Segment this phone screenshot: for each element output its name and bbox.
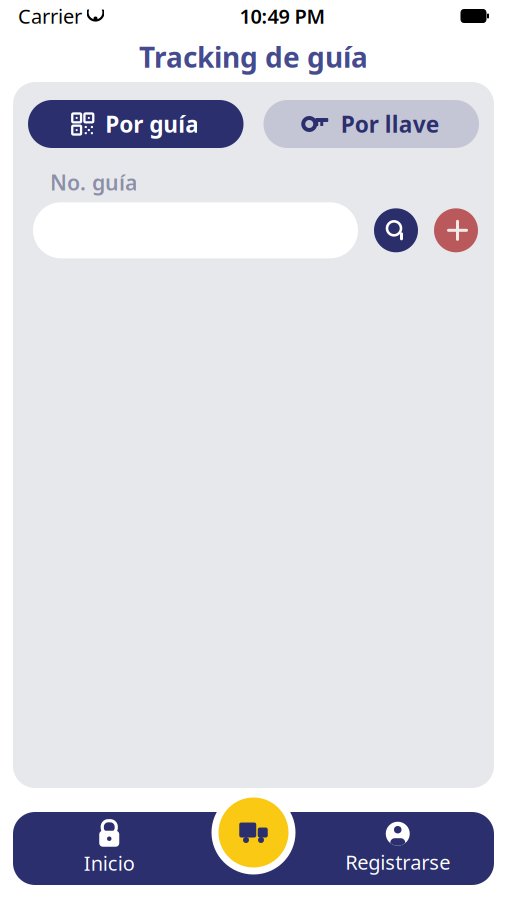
staticText: Carrier [18,3,82,29]
button[interactable]: Buscar [374,208,418,252]
staticText: Inicio [84,850,135,876]
staticText: Tracking de guía [139,38,368,76]
button[interactable]: Registrarse [301,812,494,885]
staticText: 10:49 PM [239,3,325,29]
staticText: Registrarse [345,849,450,875]
button[interactable]: Inicio [13,812,205,885]
staticText: Por guía [105,109,199,139]
button[interactable]: Limpiar [434,208,478,252]
button[interactable]: Por llave [263,100,479,148]
staticText: No. guía [50,168,137,196]
button[interactable]: Por guía [28,100,243,148]
button[interactable]: Tracking [211,790,295,874]
staticText: Por llave [341,109,440,139]
